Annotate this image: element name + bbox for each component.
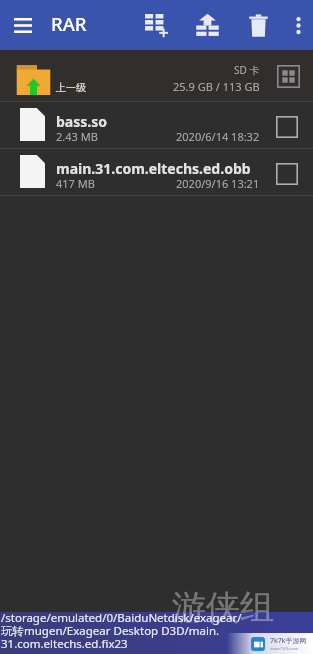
staticText: RAR (51, 11, 87, 36)
button[interactable]: Select main.31.com.eltechs.ed.obb (270, 150, 304, 197)
button[interactable]: Extract (192, 0, 222, 50)
button[interactable]: Navigation menu (5, 7, 41, 43)
staticText: 游侠组 (172, 586, 274, 629)
button[interactable]: More options (283, 0, 313, 50)
button[interactable]: main.31.com.eltechs.ed.obb (0, 149, 313, 196)
button[interactable]: Add to archive (141, 0, 171, 50)
staticText: 2020/9/16 13:21 (176, 176, 260, 191)
staticText: www.7k7k.com (270, 646, 299, 651)
staticText: 25.9 GB / 113 GB (173, 79, 260, 94)
staticText: /storage/emulated/0/BaiduNetdisk/exagear… (1, 610, 242, 652)
staticText: main.31.com.eltechs.ed.obb (56, 159, 251, 178)
staticText: 417 MB (56, 176, 95, 191)
button[interactable]: 上一级 (0, 50, 313, 102)
staticText: 7k7k手游网 (270, 636, 307, 646)
button[interactable]: Grid view (271, 59, 305, 93)
staticText: 上一级 (56, 81, 86, 94)
button[interactable]: Select bass.so (270, 103, 304, 150)
staticText: 2020/6/14 18:32 (176, 129, 260, 144)
staticText: 2.43 MB (56, 129, 98, 144)
staticText: SD 卡 (234, 63, 260, 77)
button[interactable]: Delete (243, 0, 273, 50)
button[interactable]: bass.so (0, 102, 313, 149)
staticText: bass.so (56, 112, 108, 131)
